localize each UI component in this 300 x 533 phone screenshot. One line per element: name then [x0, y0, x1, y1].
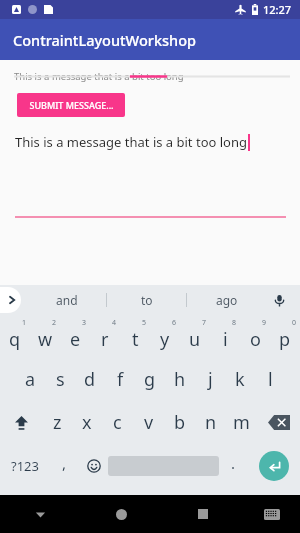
staticText: e [70, 327, 81, 352]
staticText: h [174, 367, 186, 392]
button[interactable]: s [45, 358, 75, 401]
button[interactable]: ago [187, 285, 266, 315]
staticText: a [25, 367, 36, 392]
staticText: 3 [82, 318, 87, 328]
staticText: This is a message that is a bit too long [15, 133, 247, 151]
staticText: SUBMIT MESSAGE... [29, 99, 114, 111]
button[interactable]: Voice input [266, 285, 292, 315]
staticText: c [113, 410, 122, 435]
button[interactable]: n [195, 401, 226, 444]
button[interactable]: e [60, 315, 90, 358]
staticText: p [279, 327, 291, 352]
staticText: 2 [52, 318, 57, 328]
button[interactable]: b [164, 401, 195, 444]
staticText: d [84, 367, 96, 392]
staticText: 1 [22, 318, 27, 328]
staticText: . [231, 453, 236, 473]
staticText: to [141, 292, 153, 308]
staticText: v [144, 410, 154, 435]
button[interactable]: g [135, 358, 165, 401]
button[interactable]: a [15, 358, 45, 401]
staticText: k [235, 367, 245, 392]
button[interactable]: Enter [259, 451, 289, 481]
staticText: 8 [232, 318, 237, 328]
button[interactable]: u [180, 315, 210, 358]
button[interactable]: h [165, 358, 195, 401]
button[interactable]: d [75, 358, 105, 401]
button[interactable]: z [42, 401, 72, 444]
staticText: 0 [292, 318, 297, 328]
button[interactable]: and [28, 285, 106, 315]
staticText: i [223, 327, 228, 352]
button[interactable]: . [219, 444, 248, 487]
staticText: j [208, 367, 213, 392]
button[interactable]: to [107, 285, 186, 315]
button[interactable]: Home [81, 495, 162, 533]
button[interactable]: p [270, 315, 300, 358]
button[interactable]: l [255, 358, 285, 401]
button[interactable]: r [90, 315, 120, 358]
staticText: 9 [262, 318, 267, 328]
button[interactable]: f [105, 358, 135, 401]
button[interactable]: x [72, 401, 102, 444]
button[interactable]: o [240, 315, 270, 358]
button[interactable]: j [195, 358, 225, 401]
staticText: n [205, 410, 217, 435]
staticText: o [250, 327, 261, 352]
staticText: ContraintLayoutWorkshop [13, 30, 197, 50]
staticText: and [56, 292, 78, 308]
staticText: g [144, 367, 156, 392]
staticText: This is a message that is a bit too long [14, 70, 184, 83]
staticText: z [53, 410, 62, 435]
staticText: ago [216, 292, 238, 308]
button[interactable]: SUBMIT MESSAGE... [17, 93, 125, 117]
staticText: r [101, 327, 109, 352]
button[interactable]: Hide keyboard [0, 495, 81, 533]
staticText: , [62, 453, 67, 473]
staticText: 7 [202, 318, 207, 328]
button[interactable]: ?123 [0, 444, 50, 487]
staticText: 6 [172, 318, 177, 328]
button[interactable]: , [50, 444, 79, 487]
button[interactable]: Recents [162, 495, 243, 533]
button[interactable]: q [0, 315, 30, 358]
staticText: 12:27 [263, 2, 292, 17]
staticText: f [117, 367, 124, 392]
button[interactable]: v [133, 401, 164, 444]
staticText: ?123 [11, 457, 39, 475]
button[interactable]: Backspace [257, 401, 300, 444]
button[interactable]: Expand suggestions [0, 287, 21, 313]
button[interactable]: y [150, 315, 180, 358]
staticText: u [189, 327, 201, 352]
button[interactable]: Shift [0, 401, 42, 444]
button[interactable]: t [120, 315, 150, 358]
staticText: 5 [142, 318, 147, 328]
button[interactable]: i [210, 315, 240, 358]
staticText: l [268, 367, 273, 392]
staticText: q [9, 327, 21, 352]
staticText: m [233, 410, 250, 435]
button[interactable]: k [225, 358, 255, 401]
button[interactable]: Emoji [79, 444, 108, 487]
staticText: s [56, 367, 65, 392]
staticText: x [82, 410, 92, 435]
staticText: 4 [112, 318, 117, 328]
button[interactable]: Switch keyboard [243, 495, 300, 533]
staticText: t [132, 327, 139, 352]
button[interactable]: m [226, 401, 257, 444]
button[interactable]: w [30, 315, 60, 358]
staticText: w [38, 327, 53, 352]
staticText: y [160, 327, 170, 352]
button[interactable]: c [102, 401, 133, 444]
staticText: b [174, 410, 186, 435]
